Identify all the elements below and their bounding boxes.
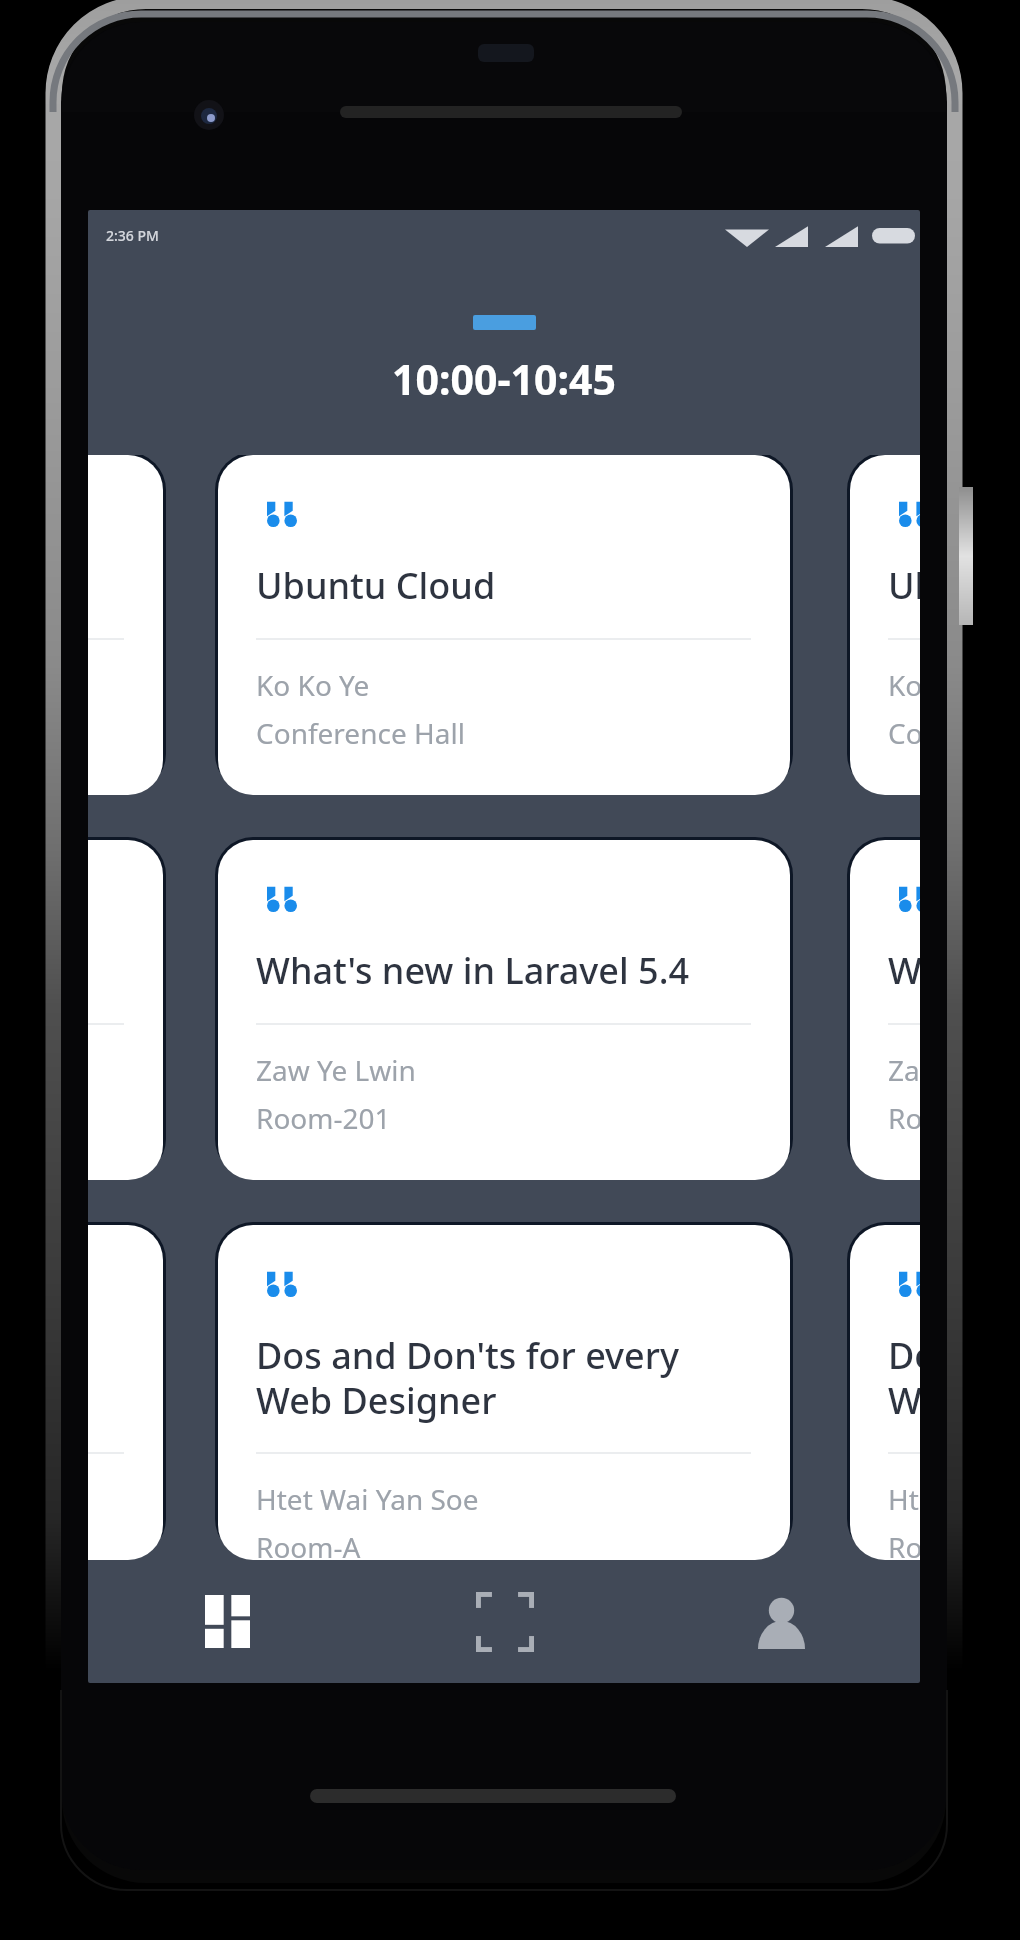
button[interactable]: Next session <box>850 840 920 1180</box>
button[interactable]: Next session <box>850 455 920 795</box>
button[interactable]: Previous session <box>88 840 163 1180</box>
button[interactable]: What's new in Laravel 5.4 <box>218 840 790 1180</box>
staticText: Dos and Don'ts for every Web Designer <box>256 1331 679 1424</box>
button[interactable]: Previous session <box>88 455 163 795</box>
staticText: Ko Ko Ye <box>256 666 370 704</box>
staticText: Ubuntu Cloud <box>888 561 920 610</box>
staticText: Zaw Ye Lwin <box>888 1051 920 1089</box>
staticText: Htet Wai Yan Soe <box>256 1480 479 1518</box>
button[interactable]: Previous session <box>88 1225 163 1560</box>
button[interactable]: Next session <box>850 1225 920 1560</box>
button[interactable]: Ubuntu Cloud <box>218 455 790 795</box>
staticText: Ko Ko Ye <box>888 666 920 704</box>
staticText: What's new in Laravel 5.4 <box>888 946 920 995</box>
staticText: Conference Hall <box>888 714 920 752</box>
button[interactable]: Dos and Don'ts for every Web Designer <box>218 1225 790 1560</box>
staticText: What's new in Laravel 5.4 <box>256 946 690 995</box>
staticText: 2:36 PM <box>106 226 159 245</box>
button[interactable]: Dashboard <box>88 1560 366 1683</box>
staticText: Room-201 <box>888 1099 920 1137</box>
staticText: Room-201 <box>256 1099 391 1137</box>
staticText: Htet Wai Yan Soe <box>888 1480 920 1518</box>
staticText: Conference Hall <box>256 714 465 752</box>
staticText: Room-A <box>888 1528 920 1560</box>
staticText: Ubuntu Cloud <box>256 561 496 610</box>
button[interactable]: Fullscreen <box>366 1560 643 1683</box>
staticText: Zaw Ye Lwin <box>256 1051 416 1089</box>
staticText: Room-A <box>256 1528 361 1560</box>
staticText: 10:00-10:45 <box>392 351 616 407</box>
button[interactable]: Profile <box>643 1560 920 1683</box>
staticText: Dos and Don'ts for every Web Designer <box>888 1331 920 1424</box>
